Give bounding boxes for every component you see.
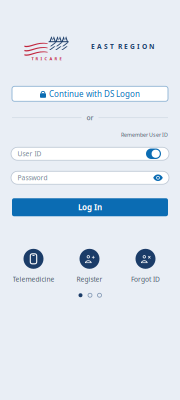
button[interactable]: Register <box>61 249 117 283</box>
staticText: Remember User ID <box>121 131 168 138</box>
button[interactable]: Telemedicine <box>5 249 61 283</box>
staticText: Register <box>76 275 102 284</box>
staticText: Forgot ID <box>131 275 160 284</box>
button[interactable]: Log In <box>12 198 168 216</box>
staticText: User ID <box>17 149 41 158</box>
staticText: Log In <box>78 202 102 212</box>
staticText: Password <box>17 173 47 182</box>
button[interactable]: Continue with DS Logon <box>12 86 168 101</box>
staticText: T R I C A R E <box>31 56 61 61</box>
button[interactable]: Forgot ID <box>117 249 173 283</box>
staticText: E A S T R E G I O N <box>91 42 154 51</box>
staticText: or <box>86 113 93 122</box>
staticText: Continue with DS Logon <box>49 88 140 99</box>
staticText: Telemedicine <box>12 275 54 284</box>
